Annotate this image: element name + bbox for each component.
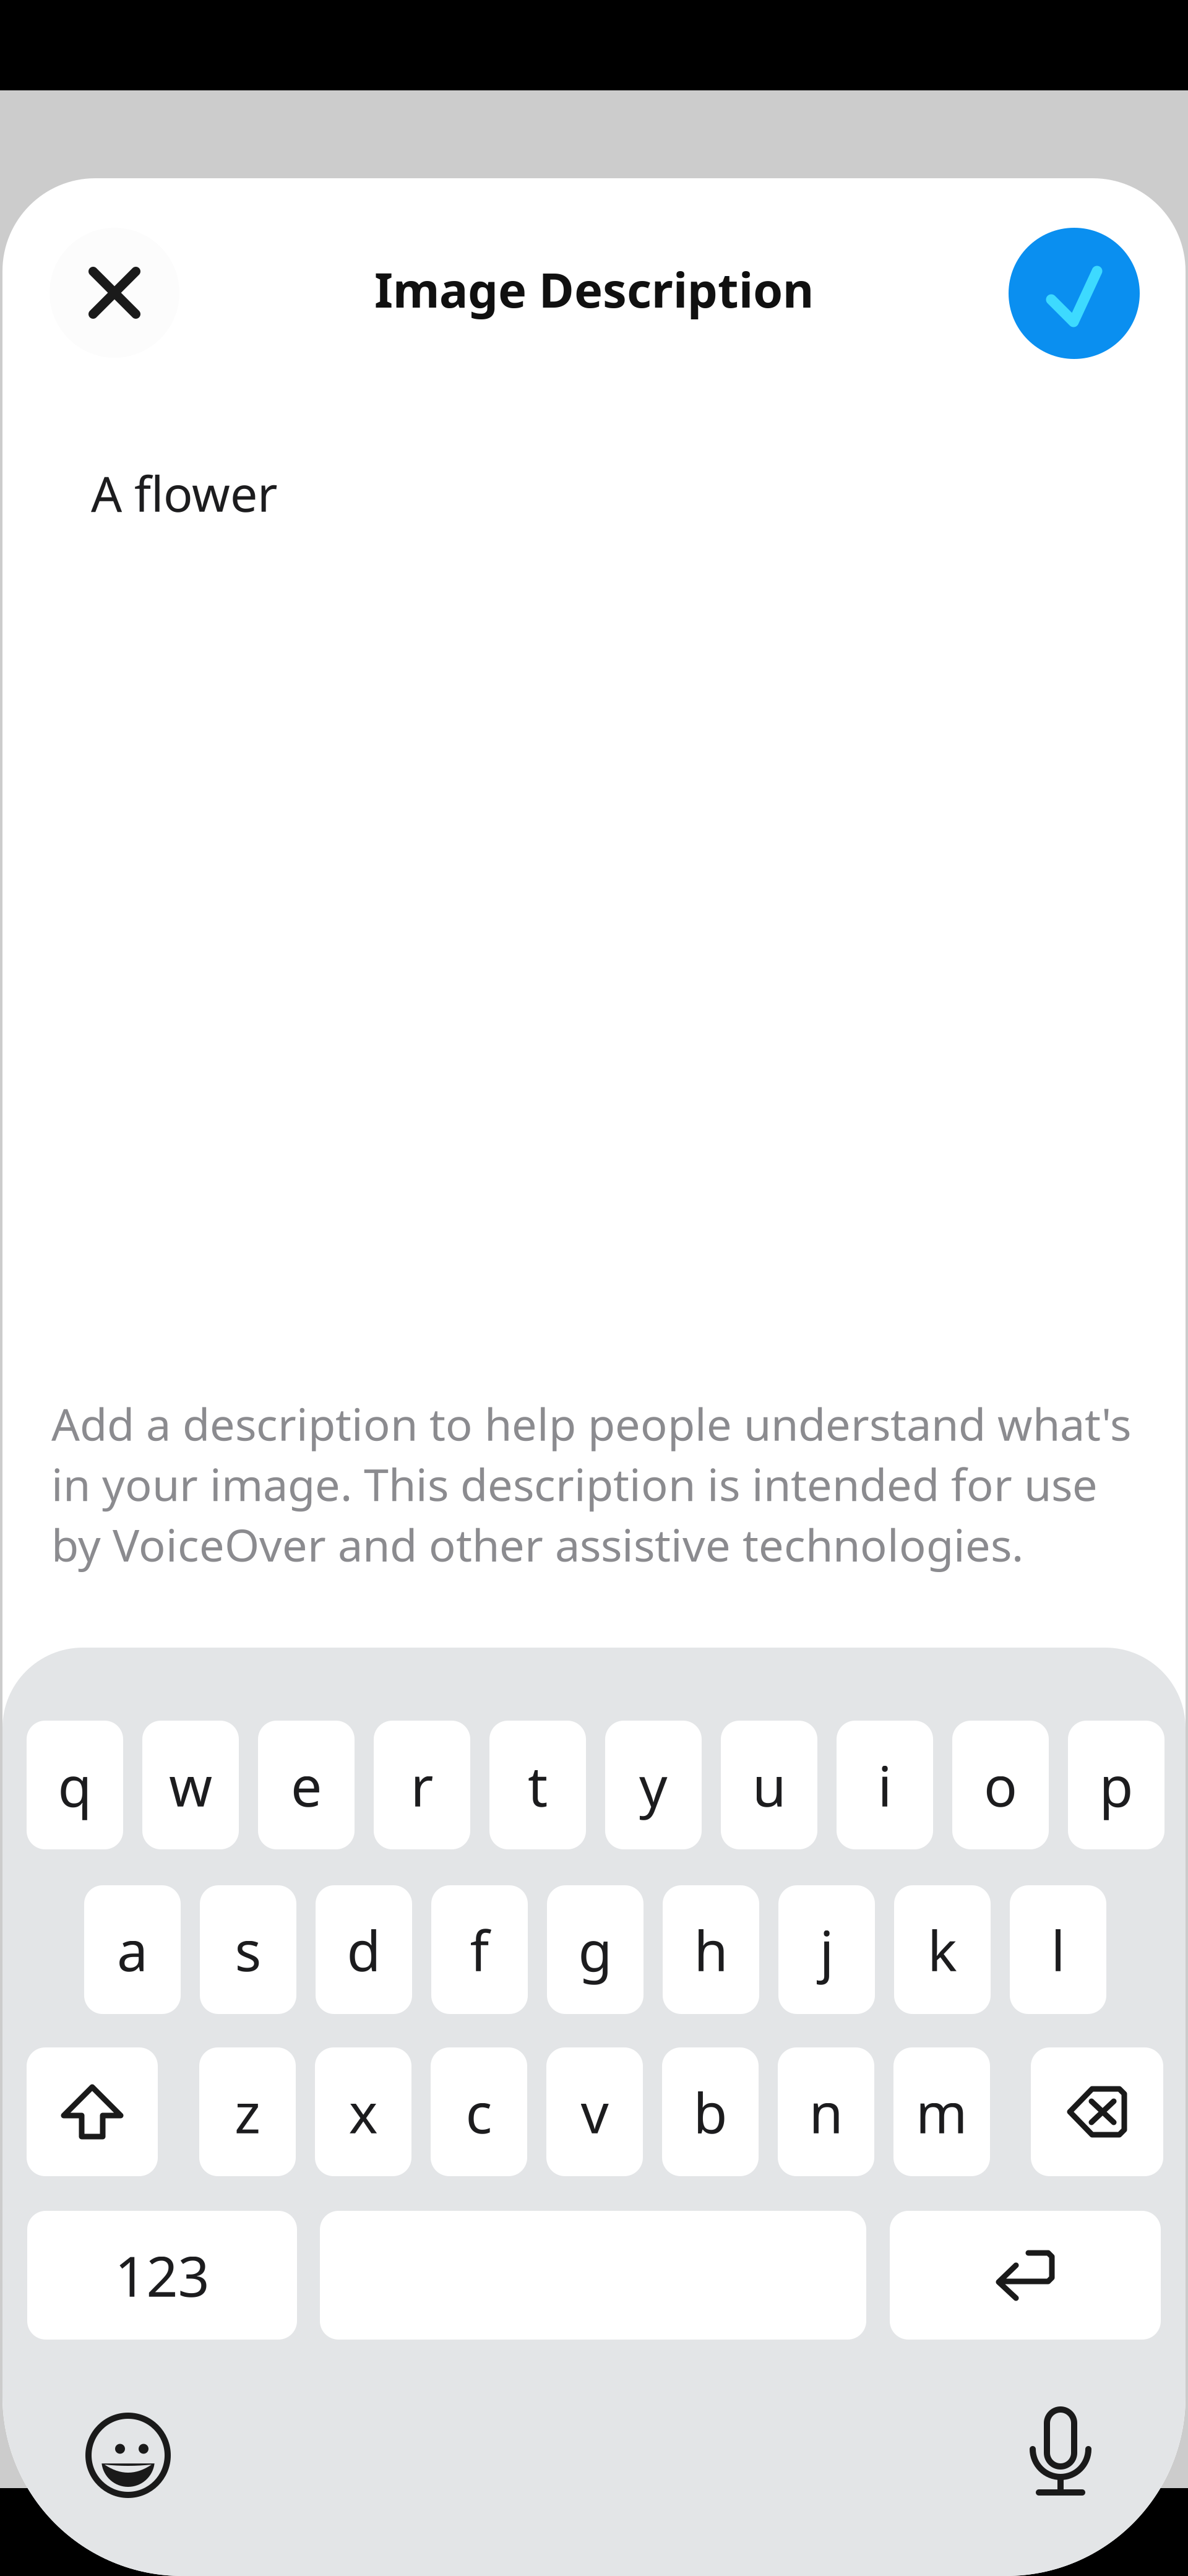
staticText: i xyxy=(878,1748,892,1822)
button[interactable]: Emoji xyxy=(88,2415,168,2496)
staticText: z xyxy=(235,2075,260,2149)
button[interactable]: c xyxy=(431,2047,527,2176)
button[interactable]: i xyxy=(837,1721,933,1849)
staticText: s xyxy=(235,1913,261,1986)
button[interactable]: s xyxy=(200,1885,296,2014)
staticText: j xyxy=(820,1913,834,1986)
staticText: f xyxy=(470,1913,489,1986)
button[interactable]: w xyxy=(142,1721,239,1849)
button[interactable]: Dictate xyxy=(1031,2410,1090,2496)
staticText: r xyxy=(411,1748,433,1822)
button[interactable]: Close xyxy=(49,228,179,358)
button[interactable]: h xyxy=(663,1885,759,2014)
staticText: x xyxy=(349,2075,378,2149)
button[interactable]: d xyxy=(316,1885,412,2014)
staticText: v xyxy=(581,2075,609,2149)
staticText: p xyxy=(1099,1748,1133,1822)
staticText: A flower xyxy=(91,460,277,525)
staticText: y xyxy=(639,1748,668,1822)
button[interactable]: Return xyxy=(890,2211,1161,2340)
button[interactable]: Done xyxy=(1009,228,1140,359)
staticText: h xyxy=(694,1913,728,1986)
staticText: d xyxy=(347,1913,381,1986)
staticText: w xyxy=(169,1748,212,1822)
staticText: b xyxy=(693,2075,727,2149)
button[interactable]: z xyxy=(199,2047,296,2176)
button[interactable]: r xyxy=(374,1721,470,1849)
staticText: Image Description xyxy=(374,257,814,321)
staticText: q xyxy=(58,1748,92,1822)
button[interactable]: o xyxy=(952,1721,1049,1849)
staticText: a xyxy=(117,1913,148,1986)
button[interactable]: y xyxy=(605,1721,702,1849)
button[interactable]: v xyxy=(546,2047,643,2176)
staticText: o xyxy=(984,1748,1017,1822)
button[interactable]: m xyxy=(893,2047,990,2176)
button[interactable]: g xyxy=(547,1885,643,2014)
staticText: Add a description to help people underst… xyxy=(51,1394,1131,1574)
staticText: k xyxy=(928,1913,957,1986)
button[interactable]: f xyxy=(431,1885,528,2014)
staticText: l xyxy=(1051,1913,1065,1986)
button[interactable]: Shift xyxy=(27,2047,158,2176)
button[interactable]: p xyxy=(1068,1721,1164,1849)
button[interactable]: x xyxy=(315,2047,411,2176)
staticText: u xyxy=(752,1748,786,1822)
button[interactable]: Delete xyxy=(1031,2047,1163,2176)
button[interactable]: n xyxy=(778,2047,874,2176)
staticText: 123 xyxy=(115,2238,209,2312)
staticText: c xyxy=(466,2075,492,2149)
staticText: e xyxy=(291,1748,322,1822)
button[interactable]: a xyxy=(84,1885,181,2014)
button[interactable]: 123 xyxy=(27,2211,297,2340)
staticText: n xyxy=(809,2075,843,2149)
button[interactable]: u xyxy=(721,1721,817,1849)
button[interactable]: q xyxy=(27,1721,123,1849)
button[interactable]: k xyxy=(894,1885,991,2014)
staticText: g xyxy=(578,1913,612,1986)
button[interactable]: l xyxy=(1010,1885,1106,2014)
button[interactable]: t xyxy=(489,1721,586,1849)
button[interactable]: e xyxy=(258,1721,355,1849)
button[interactable]: j xyxy=(778,1885,875,2014)
staticText: m xyxy=(916,2075,968,2149)
staticText: t xyxy=(528,1748,548,1822)
button[interactable]: b xyxy=(662,2047,759,2176)
